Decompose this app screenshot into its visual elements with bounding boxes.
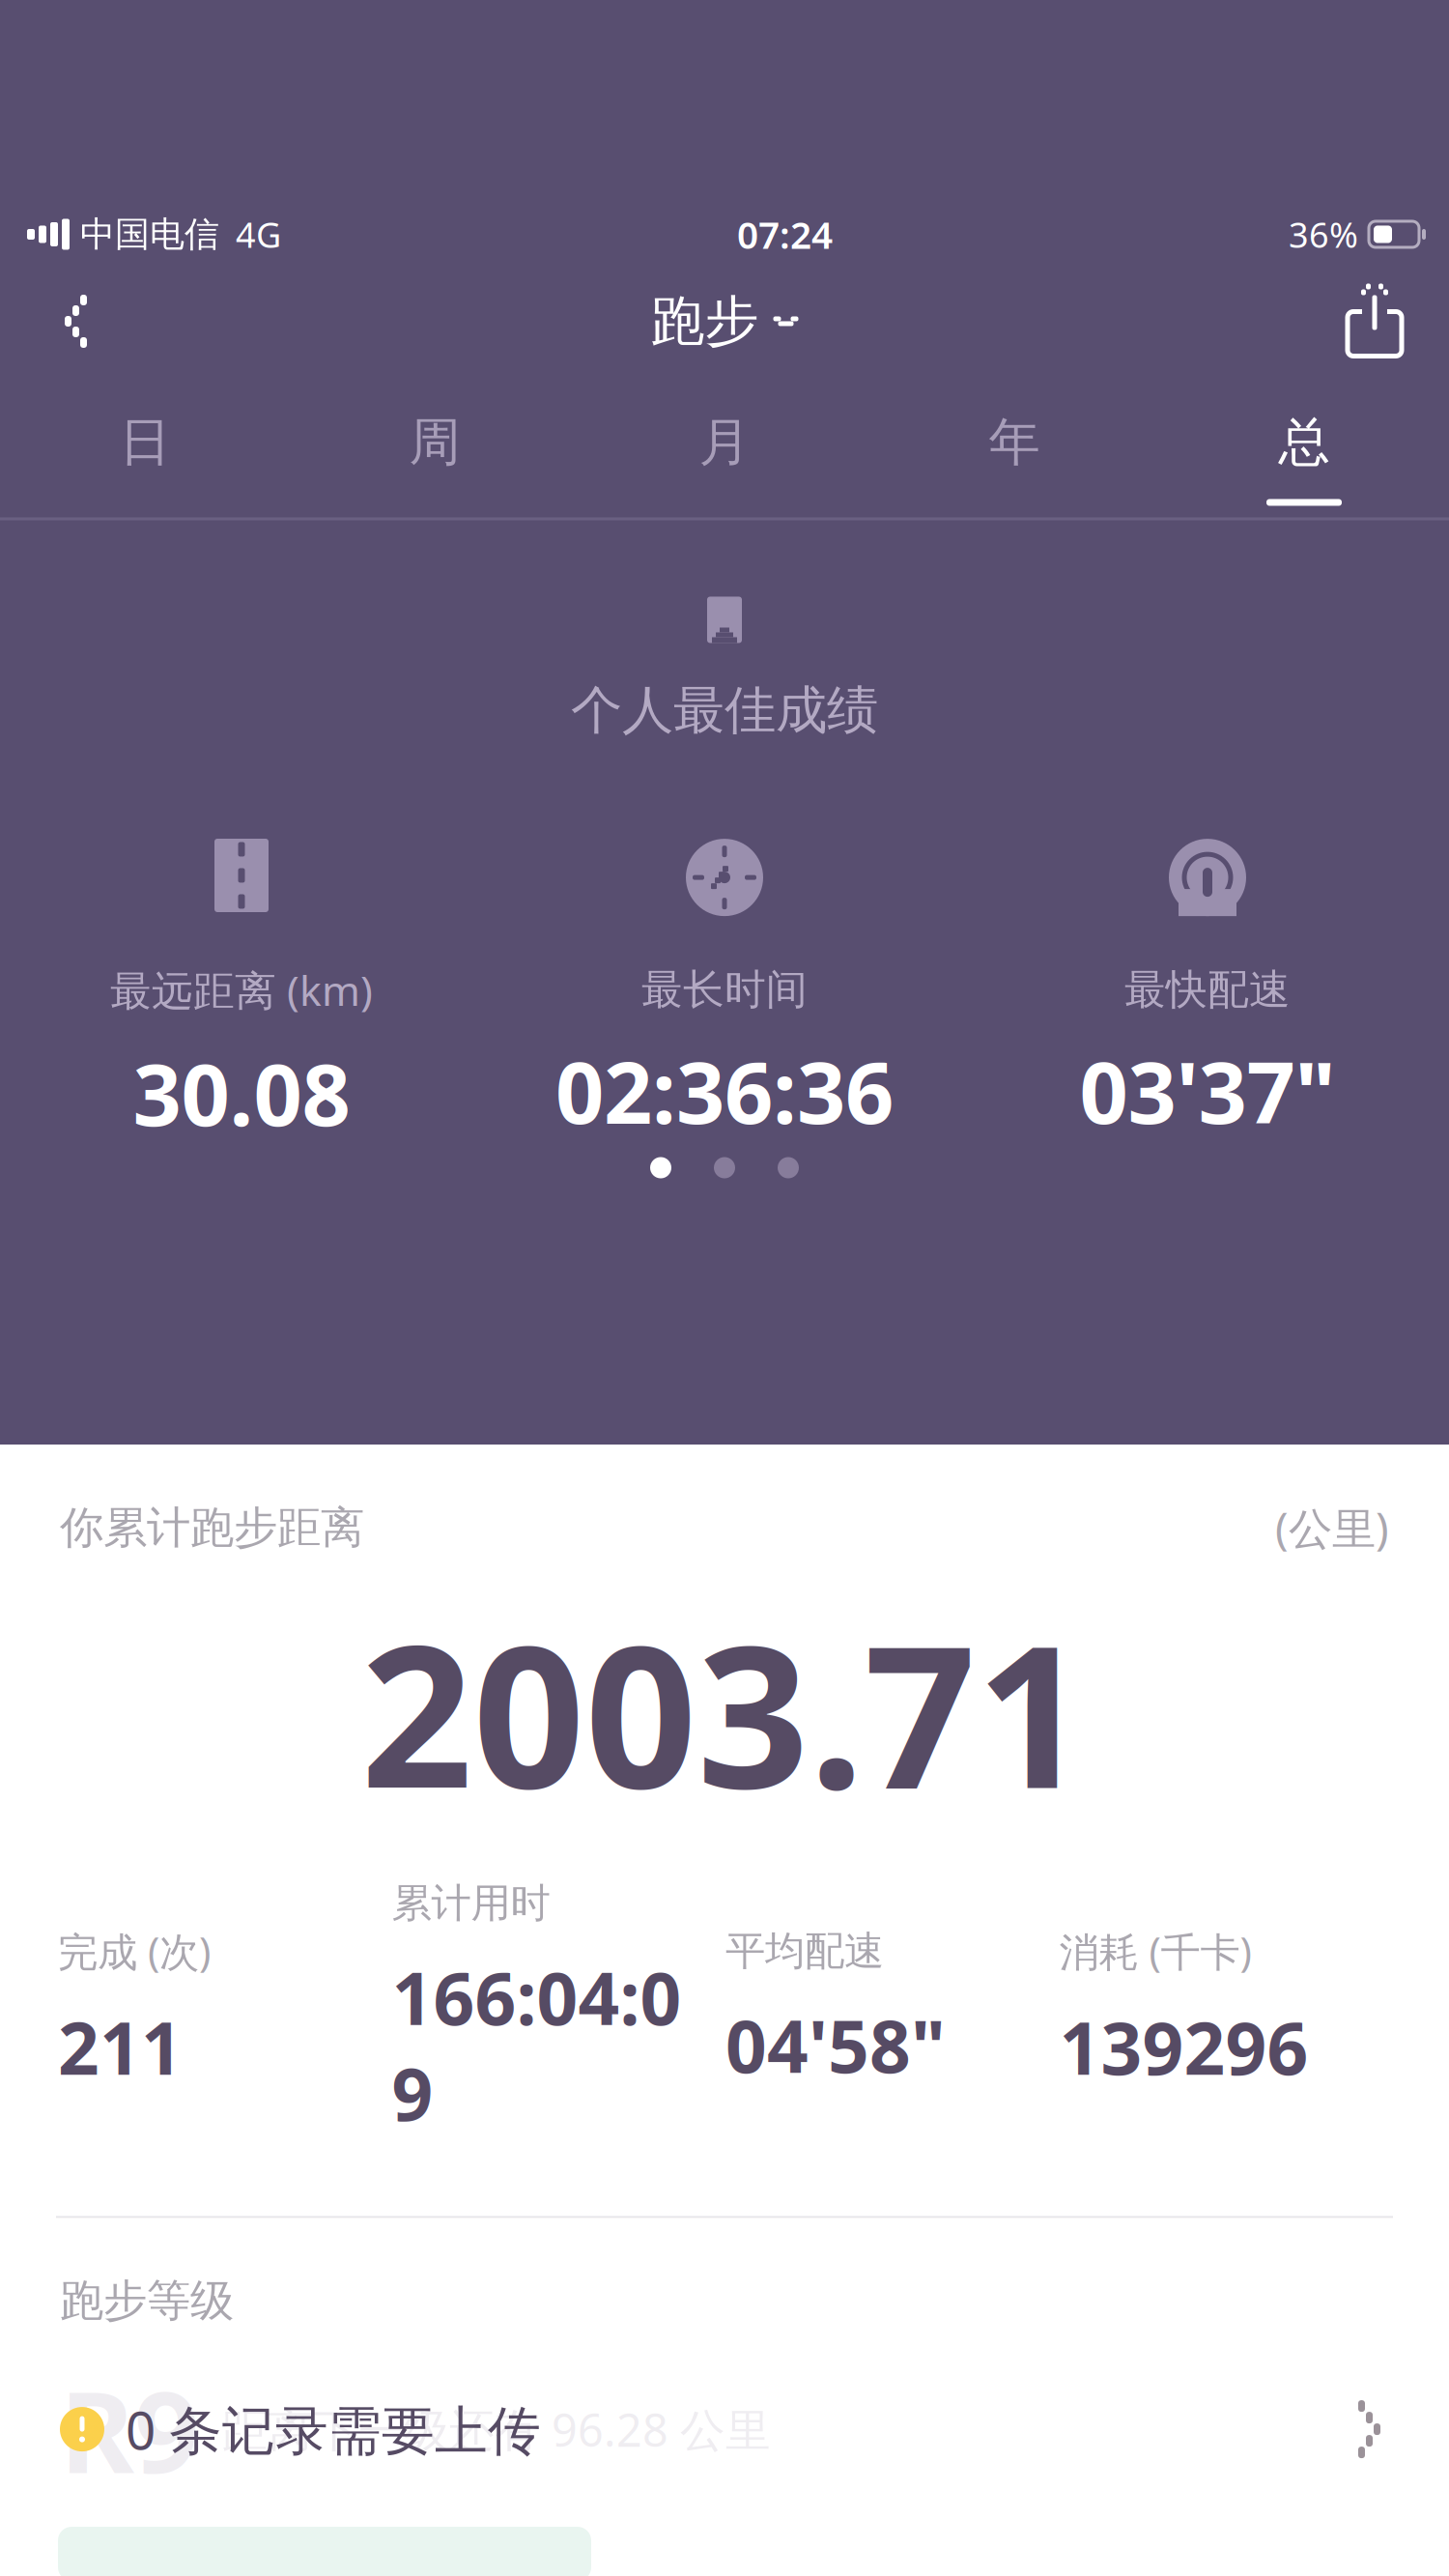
button[interactable]: 日 xyxy=(0,376,290,517)
staticText: 36% xyxy=(1289,211,1358,257)
staticText: 平均配速 xyxy=(725,1927,884,1976)
staticText: 累计用时 xyxy=(392,1879,550,1928)
staticText: 最快配速 xyxy=(1124,964,1291,1015)
staticText: 日 xyxy=(119,411,170,474)
staticText: 2003.71 xyxy=(361,1582,1088,1842)
staticText: (公里) xyxy=(1275,1499,1389,1557)
staticText: 07:24 xyxy=(737,209,833,259)
button[interactable]: R9 xyxy=(0,2357,1449,2502)
button[interactable]: 分享 xyxy=(1321,268,1428,374)
staticText: 周 xyxy=(409,411,460,474)
staticText: 02:36:36 xyxy=(555,1034,894,1147)
staticText: 年 xyxy=(989,411,1040,474)
staticText: 139296 xyxy=(1059,1999,1308,2095)
staticText: 跑步 xyxy=(651,288,759,355)
staticText: 最远距离 (km) xyxy=(110,962,373,1017)
staticText: 4G xyxy=(236,211,281,257)
staticText: 0 条记录需要上传 xyxy=(126,2394,541,2464)
staticText: 消耗 (千卡) xyxy=(1059,1925,1251,1978)
staticText: 04'58" xyxy=(725,1997,946,2093)
button[interactable]: 总 xyxy=(1159,376,1449,517)
staticText: 最长时间 xyxy=(641,964,808,1015)
staticText: 03'37" xyxy=(1080,1034,1335,1147)
button[interactable]: 周 xyxy=(290,376,580,517)
staticText: 你累计跑步距离 xyxy=(60,1501,364,1555)
staticText: 211 xyxy=(58,1999,183,2095)
button[interactable]: 跑步 xyxy=(635,276,814,366)
staticText: 跑步等级 xyxy=(60,2274,234,2328)
staticText: 166:04:09 xyxy=(392,1949,682,2141)
staticText: 中国电信 xyxy=(80,213,219,256)
button[interactable]: 月 xyxy=(580,376,869,517)
staticText: 总 xyxy=(1279,411,1330,474)
staticText: 个人最佳成绩 xyxy=(571,679,878,742)
button[interactable]: 返回 xyxy=(17,268,124,374)
staticText: 月 xyxy=(699,411,750,474)
staticText: R9 xyxy=(60,2354,199,2504)
staticText: 30.08 xyxy=(133,1036,350,1149)
staticText: 距离下一级还有 96.28 公里 xyxy=(222,2399,771,2459)
button[interactable]: 年 xyxy=(869,376,1159,517)
staticText: 完成 (次) xyxy=(58,1925,211,1978)
